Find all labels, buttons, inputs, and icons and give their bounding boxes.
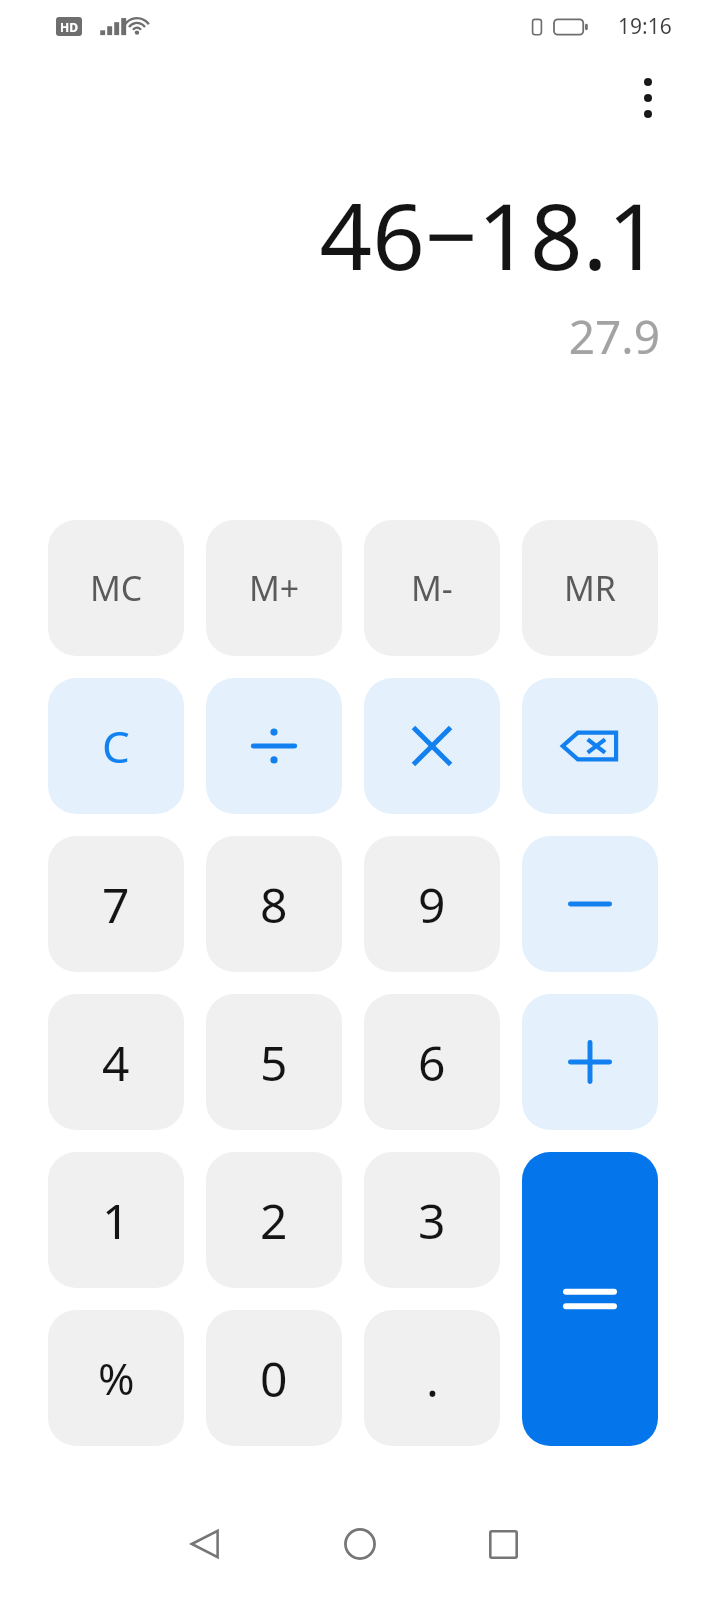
staticText: 6 [418,1030,446,1095]
button[interactable]: 1 [48,1152,184,1288]
staticText: 4 [102,1030,130,1095]
button[interactable]: Backspace [522,678,658,814]
button[interactable]: Minus [522,836,658,972]
button[interactable]: 7 [48,836,184,972]
button[interactable]: 8 [206,836,342,972]
staticText: 7 [102,872,130,937]
button[interactable]: M- [364,520,500,656]
button[interactable]: % [48,1310,184,1446]
button[interactable]: Home [320,1504,400,1584]
staticText: 5 [260,1030,288,1095]
button[interactable]: Divide [206,678,342,814]
button[interactable]: C [48,678,184,814]
staticText: 8 [260,872,288,937]
staticText: HD [60,19,78,35]
staticText: 2 [260,1188,288,1253]
staticText: 46−18.1 [319,172,660,297]
button[interactable]: MR [522,520,658,656]
button[interactable]: 5 [206,994,342,1130]
staticText: . [426,1346,439,1411]
staticText: C [102,716,130,776]
button[interactable]: 3 [364,1152,500,1288]
button[interactable]: 9 [364,836,500,972]
staticText: MR [564,565,616,611]
button[interactable]: More options [612,62,684,134]
staticText: 3 [418,1188,446,1253]
button[interactable]: 6 [364,994,500,1130]
staticText: MC [90,565,143,611]
button[interactable]: Back [165,1504,245,1584]
button[interactable]: Recent apps [463,1504,543,1584]
staticText: 19:16 [618,12,672,41]
button[interactable]: 0 [206,1310,342,1446]
staticText: 27.9 [568,305,660,368]
staticText: % [98,1348,135,1408]
button[interactable]: 2 [206,1152,342,1288]
button[interactable]: Plus [522,994,658,1130]
staticText: M+ [249,565,300,611]
button[interactable]: 4 [48,994,184,1130]
staticText: 1 [102,1188,130,1253]
button[interactable]: Multiply [364,678,500,814]
staticText: M- [411,565,453,611]
button[interactable]: . [364,1310,500,1446]
staticText: 9 [418,872,446,937]
button[interactable]: Equals [522,1152,658,1446]
staticText: 0 [260,1346,288,1411]
button[interactable]: M+ [206,520,342,656]
button[interactable]: MC [48,520,184,656]
